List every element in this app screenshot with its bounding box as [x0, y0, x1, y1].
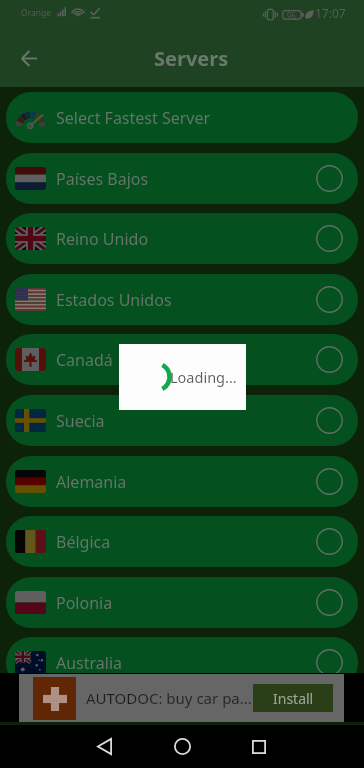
button[interactable]: Back: [10, 39, 48, 77]
staticText: Orange: [21, 7, 52, 19]
button[interactable]: Canadá: [6, 334, 358, 385]
button[interactable]: Recents: [237, 725, 281, 768]
staticText: Canadá: [56, 349, 113, 371]
button[interactable]: Países Bajos: [6, 153, 358, 204]
staticText: Alemania: [56, 471, 127, 493]
button[interactable]: Home: [160, 725, 204, 768]
staticText: Select Fastest Server: [56, 107, 211, 129]
staticText: 17:07: [315, 5, 346, 21]
button[interactable]: Estados Unidos: [6, 274, 358, 325]
button[interactable]: Install: [253, 684, 333, 712]
button[interactable]: Reino Unido: [6, 213, 358, 264]
staticText: Suecia: [56, 410, 105, 432]
button[interactable]: AUTODOC: buy car pa...: [19, 674, 344, 722]
button[interactable]: Suecia: [6, 395, 358, 446]
button[interactable]: Bélgica: [6, 516, 358, 567]
staticText: Servers: [154, 45, 229, 72]
staticText: Australia: [56, 652, 123, 674]
staticText: Países Bajos: [56, 168, 149, 190]
staticText: 96: [287, 10, 297, 21]
button[interactable]: Alemania: [6, 456, 358, 507]
button[interactable]: Australia: [6, 637, 358, 688]
button[interactable]: Polonia: [6, 577, 358, 628]
staticText: Polonia: [56, 592, 113, 614]
button[interactable]: Back: [82, 725, 126, 768]
staticText: Loading...: [170, 367, 237, 387]
staticText: AUTODOC: buy car pa...: [86, 688, 252, 708]
button[interactable]: Select Fastest Server: [6, 92, 358, 143]
staticText: Install: [273, 689, 314, 708]
staticText: Bélgica: [56, 531, 111, 553]
staticText: Estados Unidos: [56, 289, 172, 311]
staticText: Reino Unido: [56, 228, 149, 250]
